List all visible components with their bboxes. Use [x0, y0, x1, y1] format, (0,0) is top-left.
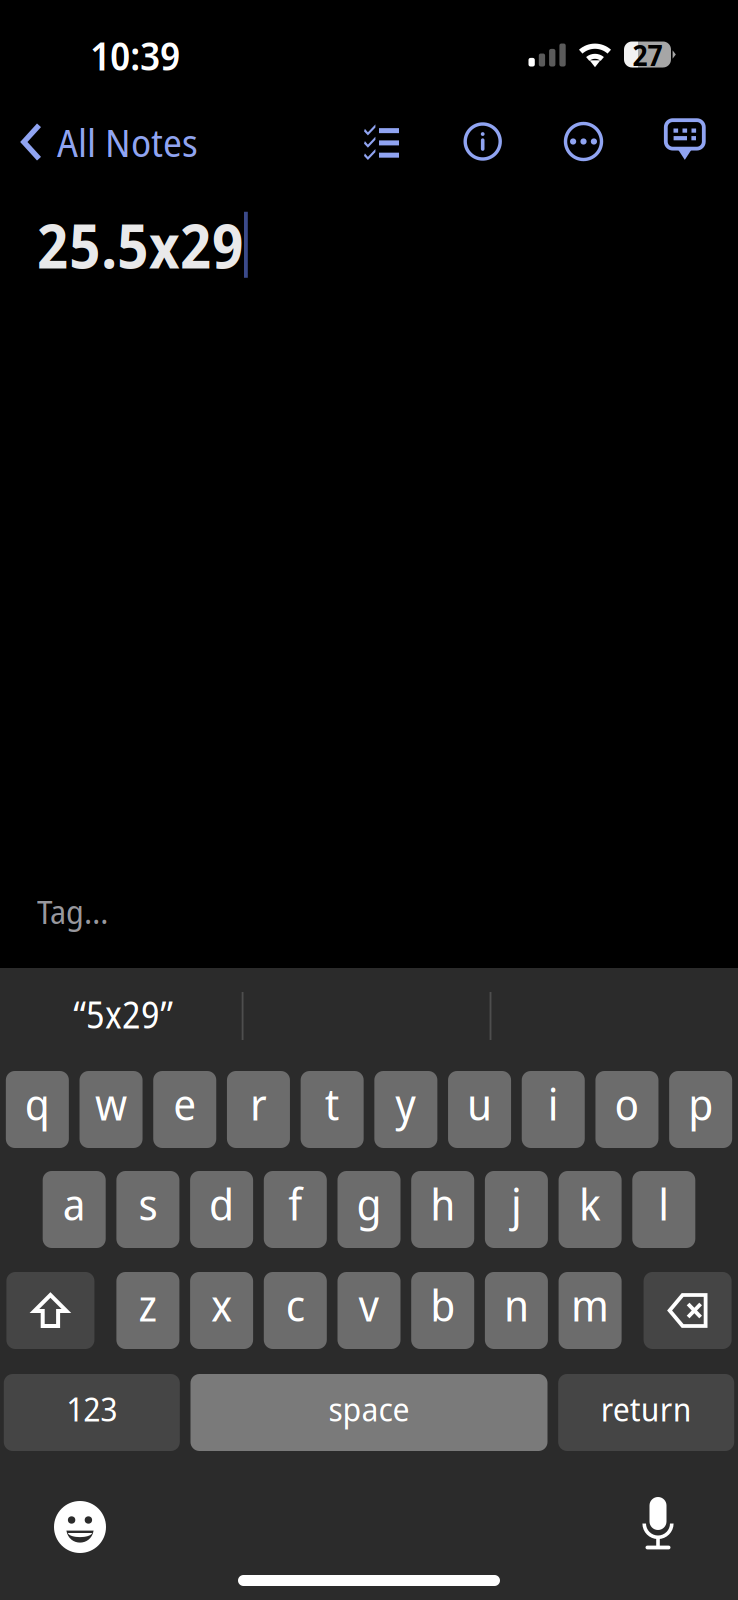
- button[interactable]: v: [337, 1272, 400, 1349]
- staticText: p: [688, 1073, 713, 1133]
- button[interactable]: return: [558, 1374, 734, 1451]
- button[interactable]: Checklist: [352, 112, 410, 170]
- button[interactable]: Info: [454, 112, 512, 170]
- staticText: g: [356, 1173, 381, 1233]
- button[interactable]: c: [264, 1272, 327, 1349]
- button[interactable]: n: [485, 1272, 548, 1349]
- staticText: i: [548, 1073, 559, 1133]
- button[interactable]: j: [485, 1171, 548, 1248]
- button[interactable]: l: [632, 1171, 695, 1248]
- staticText: t: [325, 1073, 340, 1133]
- staticText: y: [395, 1073, 416, 1133]
- staticText: n: [504, 1274, 529, 1334]
- button[interactable]: space: [190, 1374, 547, 1451]
- button[interactable]: All Notes: [0, 109, 216, 175]
- button[interactable]: d: [190, 1171, 253, 1248]
- button[interactable]: More: [554, 112, 612, 170]
- staticText: 123: [66, 1386, 117, 1431]
- staticText: f: [288, 1173, 302, 1233]
- staticText: c: [286, 1274, 305, 1334]
- button[interactable]: f: [264, 1171, 327, 1248]
- button[interactable]: h: [411, 1171, 474, 1248]
- button[interactable]: Tag…: [0, 885, 738, 937]
- staticText: 25.5x29: [37, 203, 244, 286]
- staticText: s: [138, 1173, 157, 1233]
- staticText: u: [467, 1073, 492, 1133]
- staticText: a: [63, 1173, 86, 1233]
- button[interactable]: Dictation: [625, 1497, 691, 1557]
- button[interactable]: k: [559, 1171, 622, 1248]
- staticText: b: [430, 1274, 455, 1334]
- staticText: m: [571, 1274, 609, 1334]
- staticText: Tag…: [37, 888, 108, 934]
- staticText: v: [358, 1274, 379, 1334]
- button[interactable]: 123: [4, 1374, 180, 1451]
- button[interactable]: w: [80, 1071, 143, 1148]
- button[interactable]: e: [153, 1071, 216, 1148]
- button[interactable]: q: [6, 1071, 69, 1148]
- button[interactable]: Shift: [6, 1272, 94, 1349]
- button[interactable]: i: [522, 1071, 585, 1148]
- staticText: x: [211, 1274, 232, 1334]
- staticText: r: [250, 1073, 267, 1133]
- button[interactable]: Hide Keyboard: [656, 111, 714, 169]
- staticText: q: [25, 1073, 50, 1133]
- staticText: k: [579, 1173, 601, 1233]
- staticText: “5x29”: [73, 989, 173, 1039]
- staticText: All Notes: [57, 116, 198, 168]
- staticText: d: [209, 1173, 234, 1233]
- button[interactable]: p: [669, 1071, 732, 1148]
- button[interactable]: b: [411, 1272, 474, 1349]
- button[interactable]: Delete: [644, 1272, 732, 1349]
- button[interactable]: u: [448, 1071, 511, 1148]
- button[interactable]: x: [190, 1272, 253, 1349]
- button[interactable]: a: [43, 1171, 106, 1248]
- staticText: 10:39: [90, 28, 180, 82]
- button[interactable]: t: [301, 1071, 364, 1148]
- staticText: h: [430, 1173, 455, 1233]
- button[interactable]: o: [595, 1071, 658, 1148]
- button[interactable]: z: [116, 1272, 179, 1349]
- button[interactable]: y: [374, 1071, 437, 1148]
- staticText: space: [328, 1386, 409, 1431]
- staticText: z: [138, 1274, 157, 1334]
- staticText: j: [511, 1173, 522, 1233]
- button[interactable]: s: [116, 1171, 179, 1248]
- staticText: e: [173, 1073, 196, 1133]
- staticText: o: [614, 1073, 639, 1133]
- staticText: w: [95, 1073, 127, 1133]
- staticText: 27: [632, 34, 662, 74]
- button[interactable]: g: [337, 1171, 400, 1248]
- staticText: return: [601, 1386, 692, 1431]
- button[interactable]: m: [559, 1272, 622, 1349]
- button[interactable]: Emoji: [47, 1497, 113, 1557]
- button[interactable]: r: [227, 1071, 290, 1148]
- staticText: l: [658, 1173, 669, 1233]
